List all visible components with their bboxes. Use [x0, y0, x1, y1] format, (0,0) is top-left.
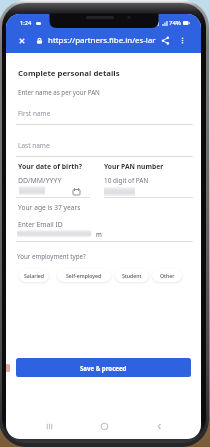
button[interactable]: Back	[153, 420, 166, 433]
staticText: Your date of birth?	[18, 162, 83, 171]
staticText: 1:24	[20, 19, 32, 27]
staticText: m	[96, 230, 102, 238]
staticText: Complete personal details	[18, 68, 120, 79]
staticText: Your PAN number	[104, 162, 164, 171]
staticText: 74%	[169, 19, 181, 27]
staticText: Last name	[18, 141, 50, 150]
button[interactable]: Self-employed	[57, 269, 111, 282]
staticText: Self-employed	[66, 272, 102, 279]
staticText: Other	[160, 272, 175, 279]
button[interactable]: Recents	[43, 420, 56, 433]
button[interactable]: Save & proceed	[16, 358, 191, 377]
staticText: Your age is 37 years	[18, 203, 81, 212]
staticText: https://partners.fibe.in/es-lar	[48, 35, 156, 46]
button[interactable]: Other	[152, 269, 182, 282]
button[interactable]: Share	[161, 36, 170, 45]
staticText: 10 digit of PAN	[104, 176, 149, 185]
staticText: First name	[18, 109, 51, 118]
staticText: Student	[122, 272, 142, 279]
staticText: Your employment type?	[17, 252, 86, 260]
staticText: DD/MM/YYYY	[18, 176, 62, 185]
staticText: Enter name as per your PAN	[18, 88, 100, 96]
button[interactable]: Student	[115, 269, 149, 282]
button[interactable]: More options	[178, 36, 187, 45]
staticText: Save & proceed	[80, 364, 127, 372]
button[interactable]: Close	[17, 36, 27, 46]
button[interactable]: Home	[98, 420, 111, 433]
staticText: Salaried	[24, 272, 44, 279]
button[interactable]: Salaried	[19, 269, 49, 282]
staticText: Enter Email ID	[18, 220, 63, 229]
